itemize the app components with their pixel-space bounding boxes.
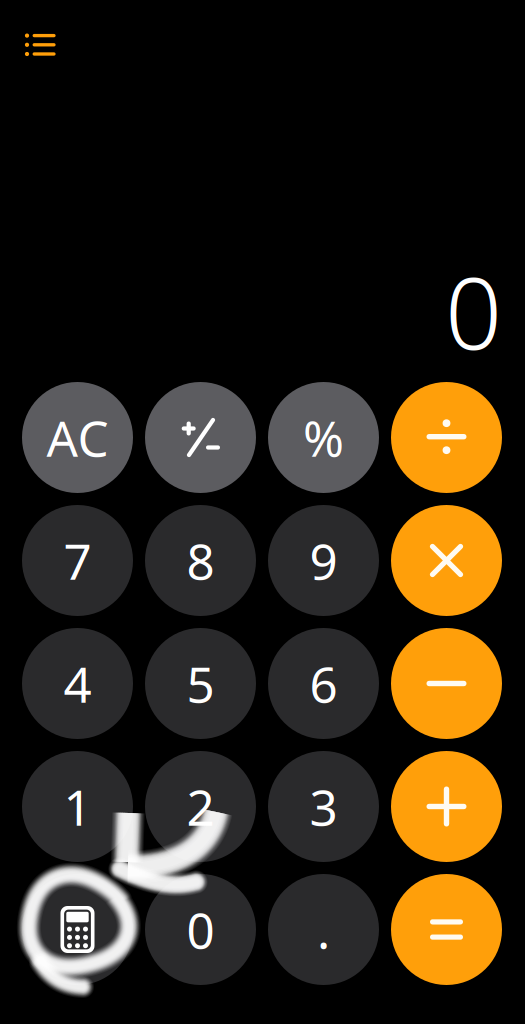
button[interactable]: History	[20, 20, 78, 74]
button[interactable]: 6	[268, 628, 379, 739]
button[interactable]: Plus	[391, 751, 502, 862]
staticText: 3	[309, 774, 337, 839]
staticText: AC	[46, 405, 108, 470]
staticText: 6	[309, 651, 337, 716]
button[interactable]: 7	[22, 505, 133, 616]
button[interactable]: 0	[145, 874, 256, 985]
staticText: 1	[63, 774, 91, 839]
button[interactable]: AC	[22, 382, 133, 493]
staticText: 0	[186, 897, 214, 962]
button[interactable]: Decimal point	[268, 874, 379, 985]
staticText: 9	[309, 528, 337, 593]
button[interactable]: Percent	[268, 382, 379, 493]
staticText: %	[303, 405, 344, 470]
button[interactable]: 3	[268, 751, 379, 862]
button[interactable]: 1	[22, 751, 133, 862]
button[interactable]: 5	[145, 628, 256, 739]
staticText: 8	[186, 528, 214, 593]
button[interactable]: 4	[22, 628, 133, 739]
button[interactable]: 8	[145, 505, 256, 616]
staticText: 5	[186, 651, 214, 716]
staticText: 2	[186, 774, 214, 839]
button[interactable]: 9	[268, 505, 379, 616]
button[interactable]: Plus Minus	[145, 382, 256, 493]
button[interactable]: 2	[145, 751, 256, 862]
staticText: 4	[63, 651, 91, 716]
staticText: 7	[63, 528, 91, 593]
staticText: .	[317, 897, 330, 962]
button[interactable]: Divide	[391, 382, 502, 493]
button[interactable]: Equals	[391, 874, 502, 985]
staticText: 0	[445, 244, 502, 377]
button[interactable]: Calculator	[22, 874, 133, 985]
button[interactable]: Multiply	[391, 505, 502, 616]
button[interactable]: Minus	[391, 628, 502, 739]
